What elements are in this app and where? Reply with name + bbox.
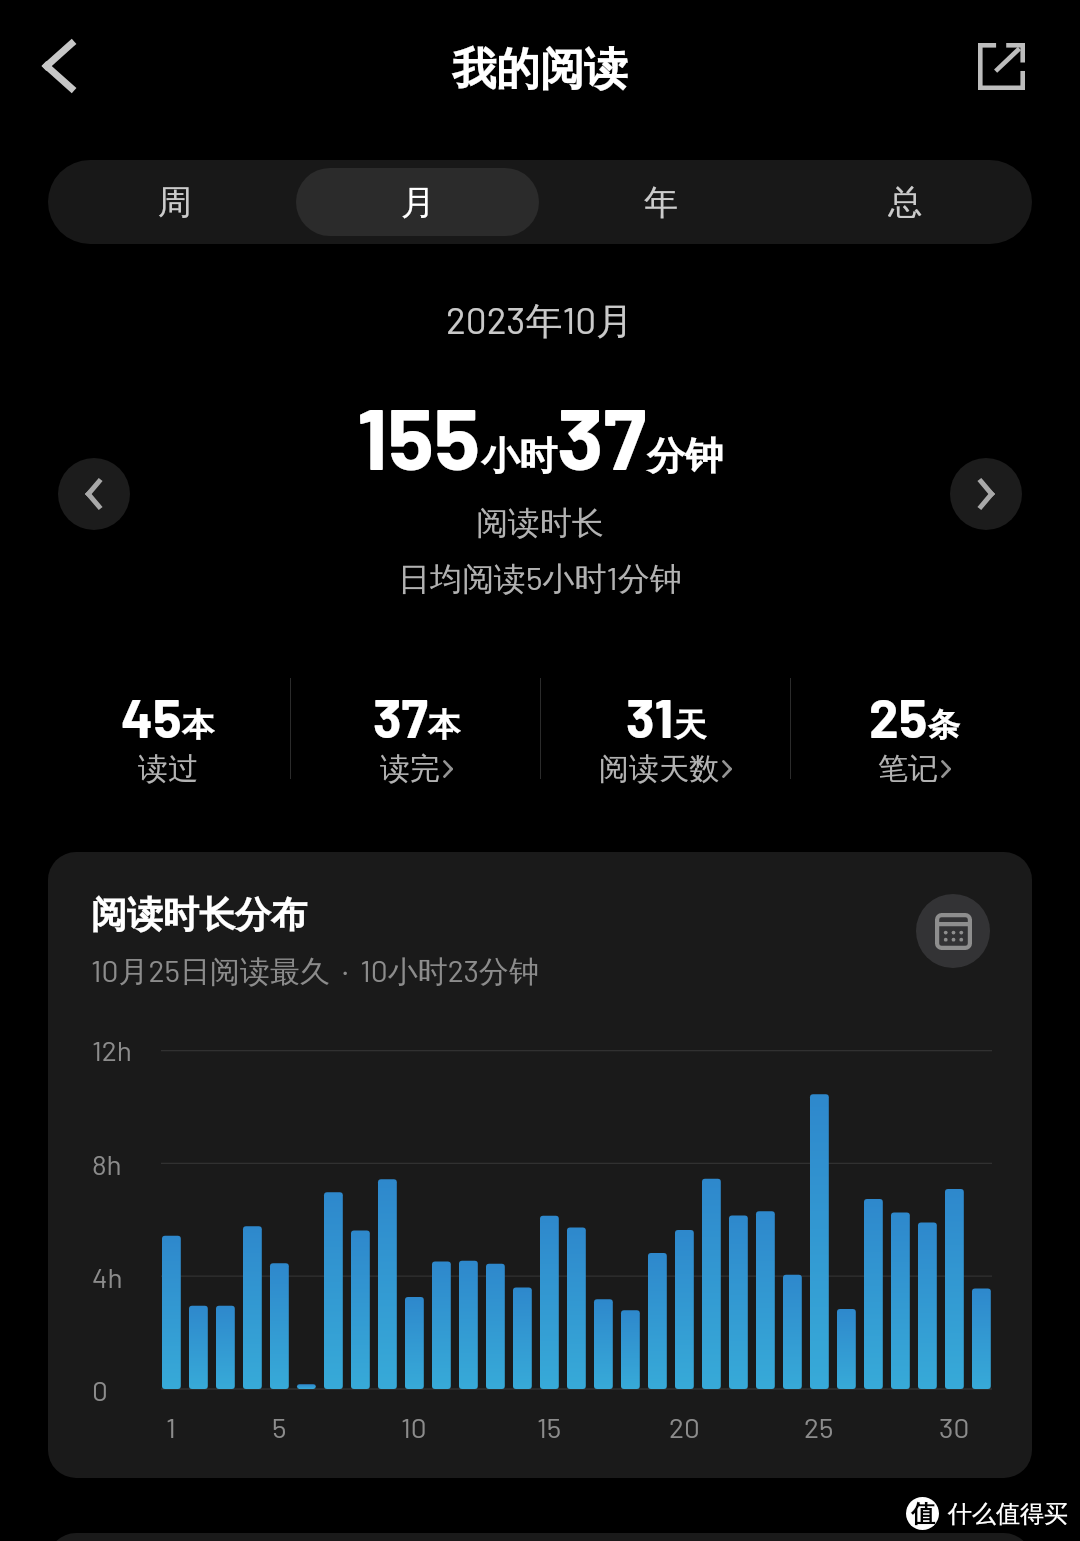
staticText: 周 xyxy=(158,181,192,224)
staticText: 我的阅读 xyxy=(452,42,628,97)
staticText: 2023年10月 xyxy=(446,297,634,345)
staticText: 37 xyxy=(373,685,428,749)
staticText: 5 xyxy=(272,1410,287,1444)
staticText: 37 xyxy=(557,384,647,487)
staticText: 25 xyxy=(869,685,928,749)
staticText: 本 xyxy=(182,705,214,745)
staticText: 20 xyxy=(669,1410,700,1444)
staticText: 读过 xyxy=(138,750,198,788)
staticText: 年 xyxy=(644,181,678,224)
staticText: 45 xyxy=(121,685,182,749)
staticText: 笔记 xyxy=(878,750,938,788)
staticText: 本 xyxy=(428,705,460,745)
staticText: 阅读时长分布 xyxy=(91,892,307,937)
button[interactable]: 周 xyxy=(53,168,296,236)
staticText: 值 xyxy=(911,1499,935,1529)
staticText: 155 xyxy=(357,384,481,487)
staticText: 读完 xyxy=(380,750,440,788)
staticText: 1 xyxy=(166,1410,176,1444)
staticText: 总 xyxy=(888,181,922,224)
staticText: 4h xyxy=(92,1260,123,1294)
staticText: 小时 xyxy=(481,432,557,480)
button[interactable]: Calendar xyxy=(916,894,990,968)
staticText: 什么值得买 xyxy=(948,1499,1068,1529)
button[interactable]: Share xyxy=(964,29,1038,103)
button[interactable]: Previous month xyxy=(58,458,130,530)
staticText: 条 xyxy=(928,705,960,745)
button[interactable]: 37 xyxy=(292,685,541,789)
button[interactable]: 总 xyxy=(783,168,1027,236)
button[interactable]: 月 xyxy=(296,168,539,236)
staticText: 0 xyxy=(92,1373,108,1407)
staticText: 12h xyxy=(92,1033,132,1067)
staticText: 分钟 xyxy=(647,432,723,480)
staticText: 阅读时长 xyxy=(476,503,604,543)
staticText: 阅读天数 xyxy=(599,750,719,788)
button[interactable]: 45 xyxy=(42,685,292,789)
staticText: 月 xyxy=(401,181,435,224)
button[interactable]: Back xyxy=(23,30,95,102)
button[interactable]: Next month xyxy=(950,458,1022,530)
staticText: 31 xyxy=(626,685,674,749)
staticText: 8h xyxy=(92,1147,122,1181)
staticText: 15 xyxy=(537,1410,562,1444)
button[interactable]: 31 xyxy=(541,685,790,789)
button[interactable]: 年 xyxy=(539,168,783,236)
staticText: 日均阅读5小时1分钟 xyxy=(398,558,682,600)
staticText: 天 xyxy=(674,705,706,745)
staticText: 25 xyxy=(804,1410,834,1444)
staticText: 30 xyxy=(939,1410,970,1444)
button[interactable]: 25 xyxy=(790,685,1039,789)
staticText: 10 xyxy=(401,1410,427,1444)
staticText: 10月25日阅读最久 · 10小时23分钟 xyxy=(91,952,540,991)
